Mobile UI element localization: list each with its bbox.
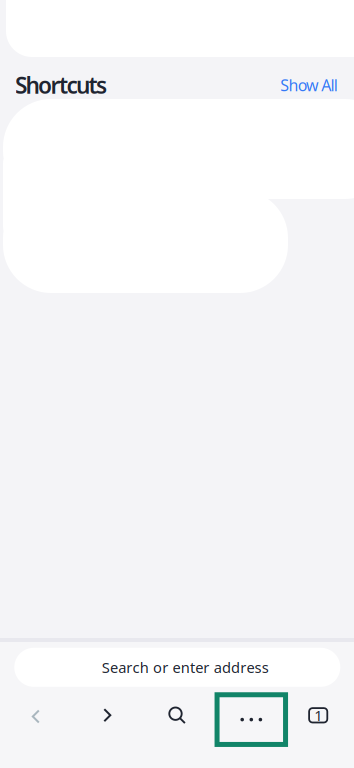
staticText: Show All	[280, 74, 338, 96]
button[interactable]: More	[215, 692, 288, 747]
button[interactable]: Forward	[83, 692, 131, 738]
staticText: Search or enter address	[102, 658, 269, 677]
button[interactable]: Show All	[278, 70, 340, 100]
staticText: Shortcuts	[15, 70, 107, 100]
staticText: 1	[314, 706, 322, 725]
button[interactable]: Search or enter address	[14, 648, 340, 687]
button[interactable]: Back	[12, 693, 60, 739]
button[interactable]: Tabs	[294, 692, 342, 738]
button[interactable]: Search	[153, 692, 201, 738]
